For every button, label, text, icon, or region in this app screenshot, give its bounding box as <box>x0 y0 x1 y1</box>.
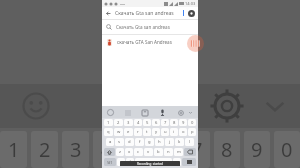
button[interactable]: Voice search <box>187 9 195 17</box>
button[interactable]: 4 <box>134 119 142 126</box>
staticText: h <box>158 139 161 145</box>
staticText: , <box>120 159 122 165</box>
staticText: d <box>128 139 131 145</box>
button[interactable]: v <box>144 148 153 156</box>
staticText: 9 <box>182 120 185 126</box>
staticText: 4 <box>137 120 140 126</box>
button[interactable]: Voice input <box>158 108 167 117</box>
button[interactable]: z <box>116 148 124 156</box>
staticText: z <box>119 149 121 155</box>
staticText: 9 <box>251 136 263 163</box>
staticText: 3 <box>127 120 130 126</box>
button[interactable]: Скачать Gta san andreas <box>102 20 198 34</box>
button[interactable]: i <box>170 128 178 136</box>
staticText: a <box>109 139 112 145</box>
button[interactable]: Clipboard <box>140 108 149 117</box>
button[interactable]: w <box>114 128 123 136</box>
staticText: 2 <box>39 136 51 163</box>
button[interactable]: Collapse toolbar <box>187 109 194 116</box>
staticText: b <box>157 149 160 155</box>
staticText: s <box>118 139 121 145</box>
button[interactable]: x <box>125 148 133 156</box>
staticText: 6 <box>155 120 158 126</box>
staticText: c <box>137 149 140 155</box>
staticText: m <box>177 149 181 155</box>
button[interactable]: Open app <box>187 35 204 52</box>
staticText: 2 <box>117 120 120 126</box>
button[interactable]: d <box>125 138 134 146</box>
staticText: скачать GTA San Andreas <box>117 39 194 45</box>
staticText: 8 <box>173 120 176 126</box>
button[interactable]: b <box>154 148 163 156</box>
button[interactable]: Keyboard settings <box>176 108 185 117</box>
staticText: 7 <box>164 120 167 126</box>
button[interactable]: n <box>164 148 173 156</box>
button[interactable]: y <box>152 128 160 136</box>
staticText: 0 <box>191 120 194 126</box>
staticText: !#1 <box>107 160 113 165</box>
button[interactable]: s <box>115 138 124 146</box>
staticText: r <box>137 129 139 135</box>
button[interactable]: p <box>188 128 196 136</box>
button[interactable]: g <box>145 138 154 146</box>
staticText: 1 <box>107 120 110 126</box>
button[interactable]: Enter <box>182 158 196 166</box>
button[interactable]: Backspace <box>184 148 196 156</box>
button[interactable]: 2 <box>114 119 123 126</box>
button[interactable]: 8 <box>170 119 178 126</box>
staticText: 8 <box>221 136 233 163</box>
staticText: w <box>117 129 121 135</box>
staticText: Скачать Gta san andreas <box>116 24 194 30</box>
button[interactable]: t <box>143 128 151 136</box>
staticText: i <box>173 129 175 135</box>
button[interactable]: e <box>124 128 133 136</box>
button[interactable]: m <box>174 148 183 156</box>
button[interactable]: Emoji <box>106 108 115 117</box>
staticText: k <box>178 139 181 145</box>
button[interactable]: Shift <box>104 148 115 156</box>
button[interactable]: 5 <box>143 119 151 126</box>
staticText: u <box>164 129 167 135</box>
button[interactable]: 6 <box>152 119 160 126</box>
staticText: g <box>148 139 151 145</box>
button[interactable]: u <box>161 128 169 136</box>
button[interactable]: j <box>165 138 174 146</box>
staticText: . <box>176 159 178 165</box>
button[interactable]: 7 <box>161 119 169 126</box>
button[interactable]: 0 <box>188 119 196 126</box>
staticText: 3 <box>70 136 82 163</box>
staticText: 14:03 <box>185 1 196 6</box>
staticText: 1 <box>8 136 20 163</box>
button[interactable]: / <box>126 158 134 166</box>
button[interactable]: 1 <box>104 119 113 126</box>
button[interactable]: f <box>135 138 144 146</box>
button[interactable]: . <box>173 158 181 166</box>
button[interactable]: скачать GTA San Andreas <box>102 35 198 49</box>
button[interactable]: r <box>134 128 142 136</box>
button[interactable]: Space <box>135 158 172 166</box>
button[interactable]: 9 <box>179 119 187 126</box>
button[interactable]: h <box>155 138 164 146</box>
other: Back <box>105 10 112 17</box>
staticText: 7 <box>191 136 203 163</box>
button[interactable]: q <box>104 128 113 136</box>
staticText: q <box>107 129 110 135</box>
staticText: Recording started <box>137 162 163 166</box>
staticText: 5 <box>131 136 143 163</box>
button[interactable]: 3 <box>124 119 133 126</box>
button[interactable]: l <box>185 138 194 146</box>
button[interactable]: Stickers <box>123 108 132 117</box>
staticText: / <box>129 159 131 165</box>
staticText: o <box>182 129 185 135</box>
button[interactable]: c <box>134 148 143 156</box>
button[interactable]: Back <box>102 7 198 19</box>
button[interactable]: k <box>175 138 184 146</box>
button[interactable]: a <box>106 138 114 146</box>
button[interactable]: , <box>117 158 125 166</box>
button[interactable]: o <box>179 128 187 136</box>
staticText: y <box>155 129 158 135</box>
staticText: Скачать Gta san andreas <box>115 10 183 17</box>
button[interactable]: !#1 <box>104 158 116 166</box>
staticText: j <box>169 139 171 145</box>
staticText: p <box>191 129 194 135</box>
